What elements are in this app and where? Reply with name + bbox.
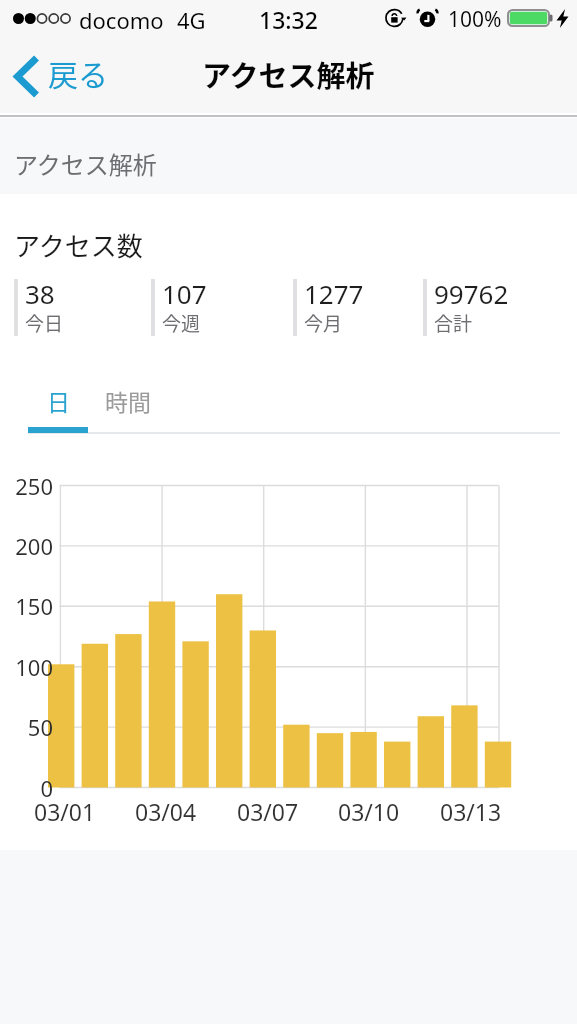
button[interactable]: 1277 [293,279,424,359]
staticText: アクセス解析 [202,53,375,95]
staticText: 03/10 [338,796,400,827]
staticText: 150 [0,591,53,621]
staticText: 03/04 [135,796,197,827]
other: Rotation lock [386,9,407,27]
staticText: 100% [448,5,502,34]
button[interactable]: 時間 [88,380,168,420]
staticText: アクセス数 [14,226,143,264]
staticText: docomo [79,5,164,35]
staticText: 今日 [25,309,64,337]
staticText: 0 [0,773,53,803]
staticText: 03/01 [34,796,96,827]
staticText: 時間 [105,384,151,417]
button[interactable]: 38 [14,279,151,359]
staticText: 日 [47,384,70,417]
button[interactable]: 戻る [0,47,122,106]
staticText: 107 [162,276,207,311]
staticText: 13:32 [259,4,318,35]
button[interactable]: 107 [151,279,293,359]
staticText: 250 [0,471,53,501]
staticText: 03/07 [237,796,299,827]
staticText: 50 [0,712,53,742]
button[interactable]: 日 [28,380,88,420]
staticText: 合計 [434,309,473,337]
staticText: 今週 [162,309,201,337]
staticText: 4G [177,5,206,35]
staticText: 99762 [434,276,509,311]
staticText: 03/13 [440,796,502,827]
staticText: 1277 [304,276,364,311]
staticText: 38 [25,276,55,311]
staticText: 100 [0,652,53,682]
other: Alarm [418,9,437,27]
other: Battery 100 percent [507,9,553,27]
staticText: アクセス解析 [14,146,157,181]
button[interactable]: 99762 [423,279,563,359]
staticText: 戻る [48,51,108,94]
staticText: 今月 [304,309,343,337]
staticText: 200 [0,531,53,561]
